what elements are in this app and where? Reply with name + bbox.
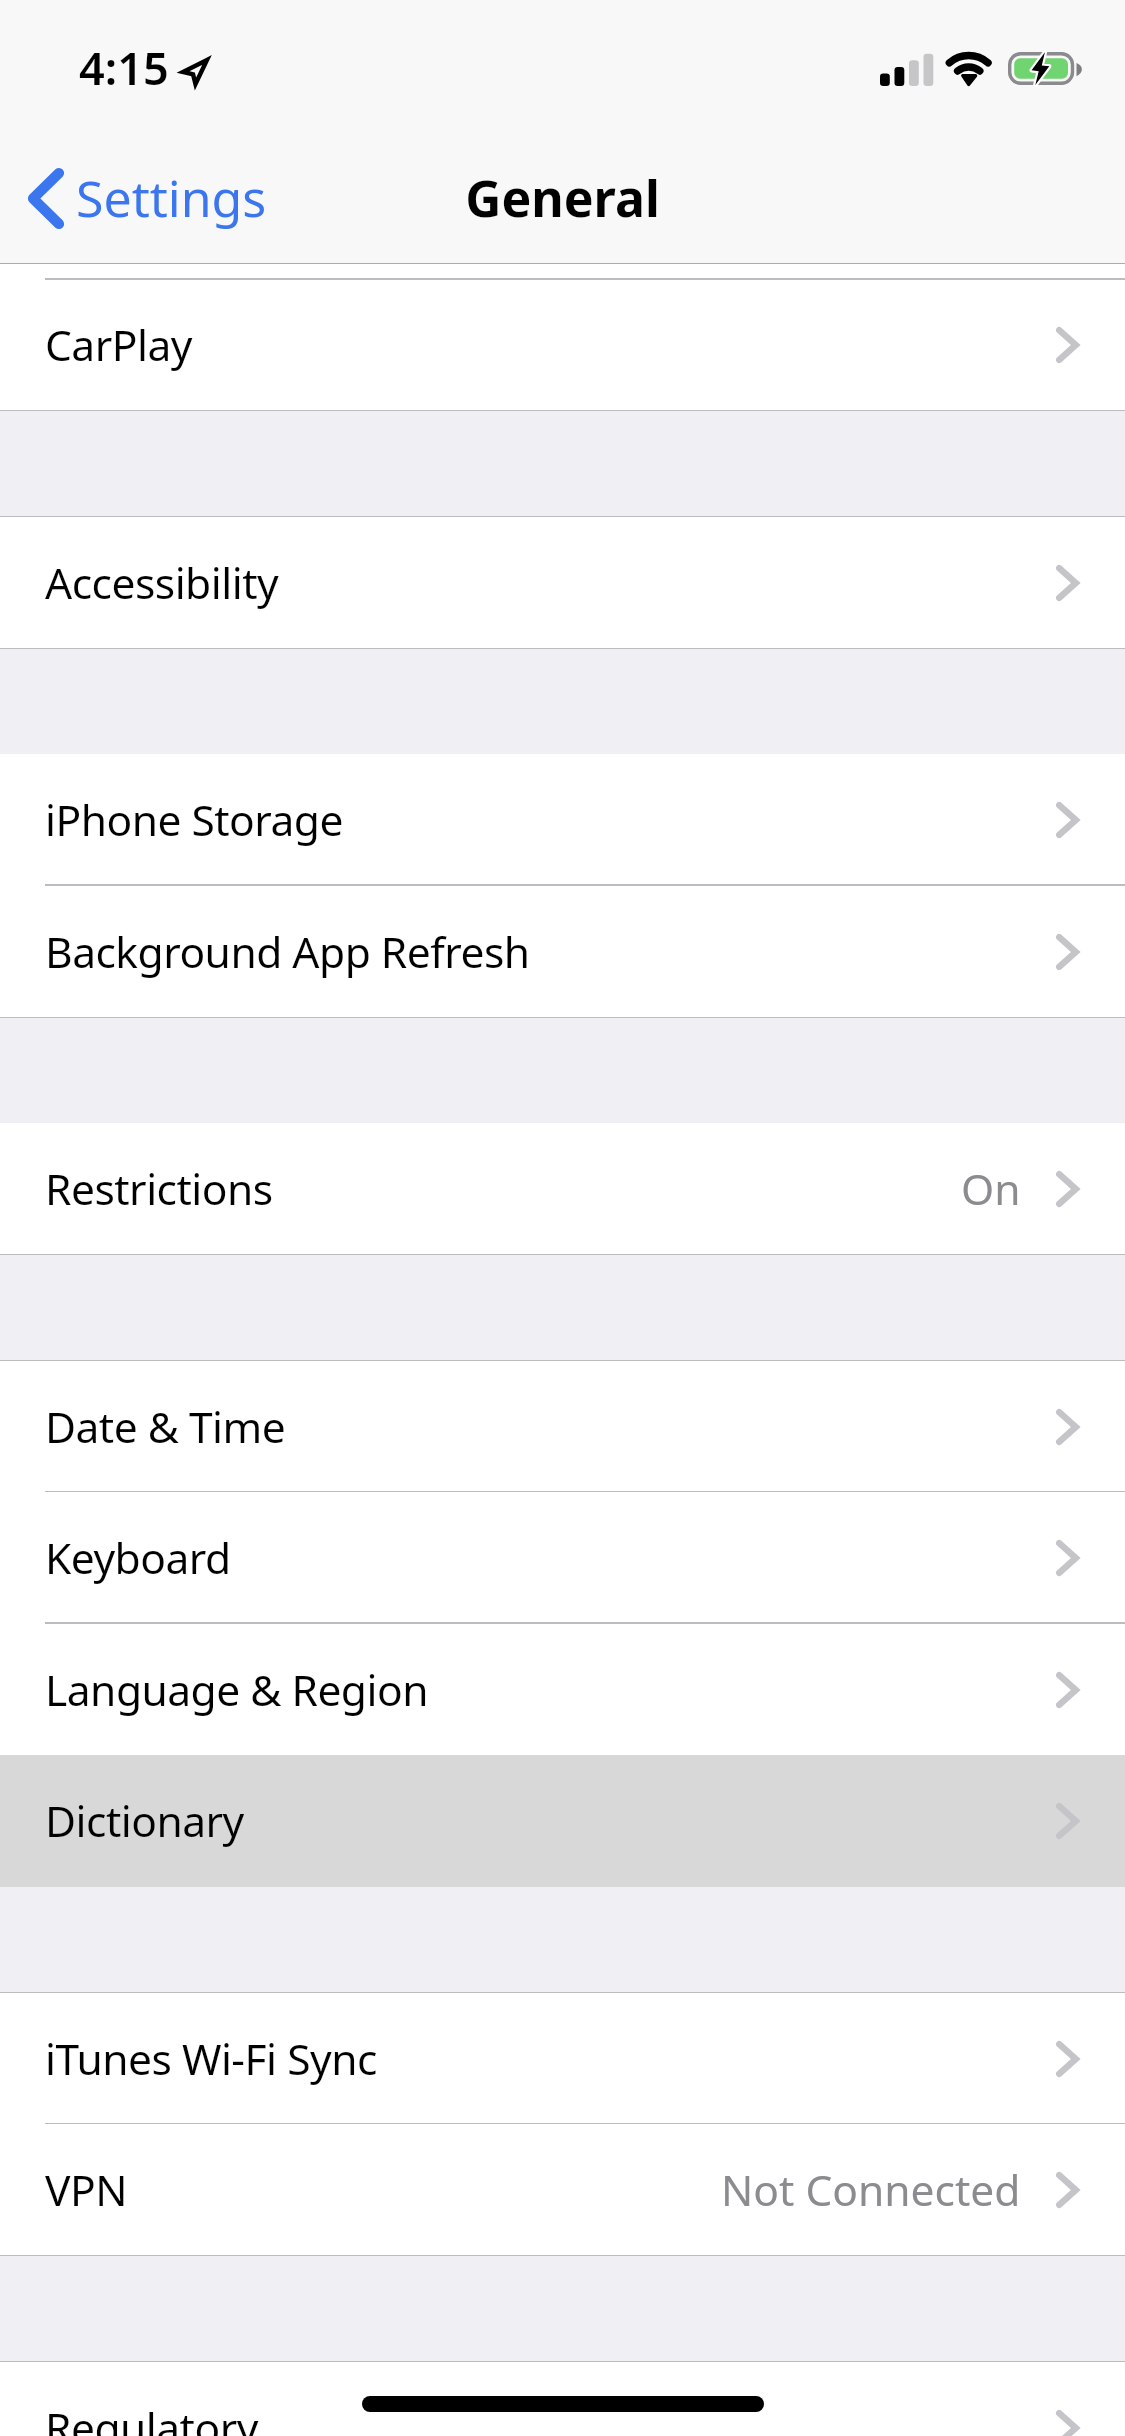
other: Open: [1056, 1672, 1079, 1708]
staticText: 4:15: [79, 37, 169, 98]
button[interactable]: iPhone Storage: [0, 754, 1125, 886]
button[interactable]: Back: [0, 132, 283, 264]
other: Open: [1056, 1540, 1079, 1576]
other: Open: [1056, 802, 1079, 838]
button[interactable]: Dictionary: [0, 1755, 1125, 1887]
other: Open: [1056, 565, 1079, 601]
button[interactable]: Language & Region: [0, 1624, 1125, 1756]
staticText: Date & Time: [45, 1398, 286, 1456]
other: Open: [1056, 327, 1079, 363]
button[interactable]: iTunes Wi-Fi Sync: [0, 1993, 1125, 2125]
button[interactable]: CarPlay: [0, 279, 1125, 411]
button[interactable]: Keyboard: [0, 1492, 1125, 1624]
staticText: iPhone Storage: [45, 791, 343, 849]
staticText: VPN: [45, 2161, 128, 2219]
other: Back: [28, 168, 64, 229]
other: Open: [1056, 1171, 1079, 1207]
other: Open: [1056, 2172, 1079, 2208]
button[interactable]: Accessibility: [0, 517, 1125, 649]
button[interactable]: Restrictions: [0, 1123, 1125, 1255]
staticText: Language & Region: [45, 1661, 428, 1719]
other: Open: [1056, 1803, 1079, 1839]
other: Open: [1056, 2041, 1079, 2077]
staticText: Background App Refresh: [45, 923, 530, 981]
button[interactable]: Regulatory: [0, 2362, 1125, 2436]
button[interactable]: Background App Refresh: [0, 886, 1125, 1018]
staticText: Regulatory: [45, 2399, 258, 2436]
staticText: Keyboard: [45, 1529, 231, 1587]
staticText: On: [961, 1160, 1021, 1218]
other: Open: [1056, 2410, 1079, 2436]
button[interactable]: VPN: [0, 2124, 1125, 2256]
staticText: iTunes Wi-Fi Sync: [45, 2030, 377, 2088]
staticText: Not Connected: [721, 2161, 1021, 2219]
other: Open: [1056, 1409, 1079, 1445]
button[interactable]: Date & Time: [0, 1361, 1125, 1493]
staticText: CarPlay: [45, 316, 192, 374]
other: Open: [1056, 934, 1079, 970]
staticText: Dictionary: [45, 1792, 244, 1850]
staticText: General: [465, 164, 660, 232]
staticText: Settings: [76, 164, 267, 232]
staticText: Restrictions: [45, 1160, 273, 1218]
staticText: Accessibility: [45, 554, 279, 612]
